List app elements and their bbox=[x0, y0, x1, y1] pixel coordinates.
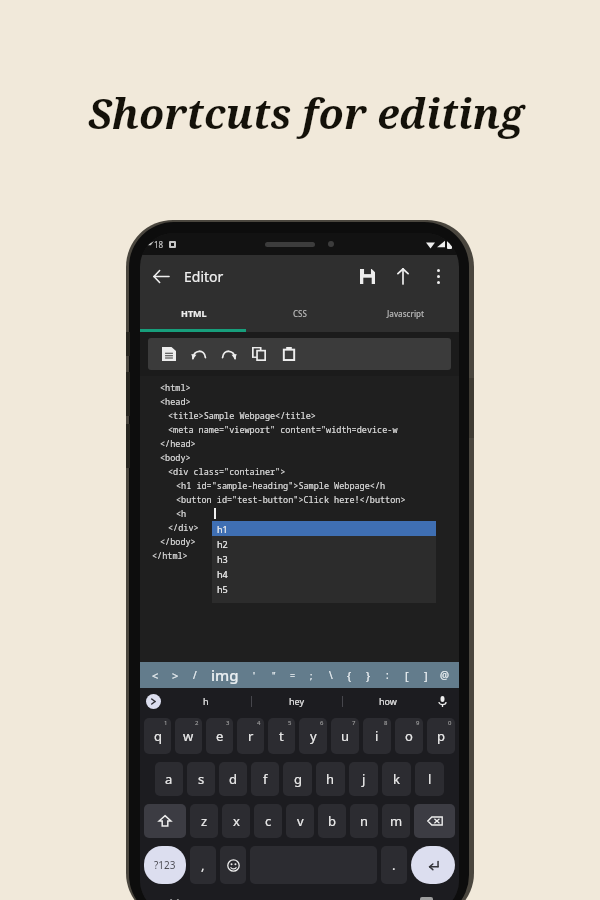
staticText: ?123 bbox=[154, 858, 176, 872]
button[interactable]: Shift bbox=[144, 804, 186, 838]
staticText: 6 bbox=[320, 719, 324, 727]
button[interactable]: f bbox=[251, 762, 279, 796]
button[interactable]: v bbox=[286, 804, 314, 838]
button[interactable]: > bbox=[165, 662, 185, 688]
button[interactable]: " bbox=[264, 662, 283, 688]
staticText: " bbox=[272, 669, 276, 681]
button[interactable]: h2 bbox=[212, 536, 436, 551]
staticText: } bbox=[366, 668, 371, 683]
button[interactable]: a bbox=[155, 762, 183, 796]
button[interactable]: q bbox=[144, 718, 171, 754]
button[interactable]: j bbox=[349, 762, 378, 796]
button[interactable]: l bbox=[415, 762, 444, 796]
button[interactable]: h bbox=[161, 688, 251, 714]
button[interactable]: n bbox=[350, 804, 378, 838]
button[interactable]: / bbox=[185, 662, 205, 688]
button[interactable]: o bbox=[395, 718, 423, 754]
button[interactable]: CSS bbox=[247, 297, 353, 329]
staticText: { bbox=[347, 668, 352, 683]
staticText: h bbox=[203, 695, 209, 707]
staticText: , bbox=[201, 856, 205, 874]
button[interactable]: Emoji bbox=[220, 846, 246, 884]
button[interactable]: @ bbox=[435, 662, 454, 688]
button[interactable]: b bbox=[318, 804, 346, 838]
button[interactable]: h bbox=[316, 762, 345, 796]
staticText: q bbox=[154, 727, 162, 745]
button[interactable]: < bbox=[145, 662, 165, 688]
staticText: : bbox=[386, 668, 389, 682]
button[interactable]: { bbox=[340, 662, 359, 688]
button[interactable]: hey bbox=[252, 688, 342, 714]
staticText: z bbox=[201, 812, 208, 830]
staticText: o bbox=[405, 727, 413, 745]
button[interactable]: m bbox=[382, 804, 410, 838]
button[interactable]: Redo bbox=[214, 339, 244, 369]
staticText: l bbox=[428, 770, 432, 788]
staticText: \ bbox=[329, 668, 333, 682]
button[interactable]: h5 bbox=[212, 581, 436, 596]
button[interactable]: Back bbox=[140, 256, 180, 296]
button[interactable]: , bbox=[190, 846, 216, 884]
button[interactable]: how bbox=[343, 688, 433, 714]
button[interactable]: k bbox=[382, 762, 411, 796]
button[interactable]: Backspace bbox=[414, 804, 455, 838]
staticText: h2 bbox=[217, 538, 228, 550]
button[interactable]: e bbox=[206, 718, 233, 754]
button[interactable]: . bbox=[381, 846, 407, 884]
staticText: u bbox=[341, 727, 350, 745]
button[interactable]: d bbox=[219, 762, 247, 796]
button[interactable]: Paste bbox=[274, 339, 304, 369]
button[interactable]: t bbox=[268, 718, 295, 754]
button[interactable]: } bbox=[359, 662, 378, 688]
button[interactable]: r bbox=[237, 718, 264, 754]
staticText: how bbox=[379, 695, 397, 707]
button[interactable]: h1 bbox=[212, 521, 436, 536]
button[interactable]: p bbox=[427, 718, 455, 754]
button[interactable]: Javascript bbox=[353, 297, 459, 329]
staticText: h5 bbox=[217, 583, 228, 595]
button[interactable]: y bbox=[299, 718, 327, 754]
button[interactable]: Voice input bbox=[433, 692, 451, 710]
button[interactable]: More options bbox=[421, 259, 455, 293]
button[interactable]: Switch keyboard bbox=[420, 897, 433, 900]
staticText: v bbox=[297, 812, 304, 830]
button[interactable]: u bbox=[331, 718, 359, 754]
button[interactable]: ; bbox=[302, 662, 321, 688]
button[interactable]: Save bbox=[349, 258, 385, 294]
staticText: 3 bbox=[226, 719, 230, 727]
button[interactable]: z bbox=[190, 804, 218, 838]
button[interactable]: g bbox=[283, 762, 312, 796]
button[interactable]: Enter bbox=[411, 846, 455, 884]
button[interactable]: HTML bbox=[140, 297, 247, 329]
button[interactable]: \ bbox=[321, 662, 340, 688]
button[interactable]: : bbox=[378, 662, 397, 688]
button[interactable]: Upload bbox=[385, 258, 421, 294]
staticText: @ bbox=[440, 668, 449, 682]
button[interactable]: w bbox=[175, 718, 202, 754]
staticText: 5 bbox=[288, 719, 292, 727]
staticText: h3 bbox=[217, 553, 228, 565]
staticText: y bbox=[310, 727, 317, 745]
button[interactable]: c bbox=[254, 804, 282, 838]
button[interactable]: s bbox=[187, 762, 215, 796]
button[interactable]: h4 bbox=[212, 566, 436, 581]
button[interactable]: Expand suggestions bbox=[146, 694, 161, 709]
staticText: <body> bbox=[160, 452, 191, 466]
staticText: 8 bbox=[384, 719, 388, 727]
button[interactable]: h3 bbox=[212, 551, 436, 566]
button[interactable]: i bbox=[363, 718, 391, 754]
button[interactable]: x bbox=[222, 804, 250, 838]
button[interactable]: ' bbox=[245, 662, 264, 688]
button[interactable]: img bbox=[205, 662, 245, 688]
button[interactable]: [ bbox=[397, 662, 416, 688]
button[interactable]: Copy bbox=[244, 339, 274, 369]
button[interactable]: = bbox=[283, 662, 302, 688]
staticText: x bbox=[233, 812, 240, 830]
button[interactable]: New file bbox=[154, 339, 184, 369]
button[interactable]: Undo bbox=[184, 339, 214, 369]
button[interactable]: ?123 bbox=[144, 846, 186, 884]
staticText: 2 bbox=[195, 719, 199, 727]
button[interactable]: Hide keyboard bbox=[168, 895, 181, 900]
button[interactable]: ] bbox=[416, 662, 435, 688]
